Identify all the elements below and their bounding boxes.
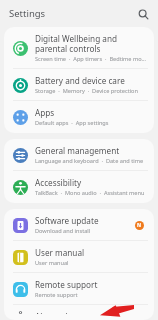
staticText: Download and install [35,227,91,235]
button[interactable]: User manual [4,241,154,273]
staticText: Accessibility [35,177,82,188]
staticText: Language and keyboard · Date and time [35,157,144,165]
staticText: Battery and device care [35,75,125,86]
button[interactable]: Remote support [4,273,154,305]
button[interactable]: Software update [4,209,154,241]
staticText: Default apps · App settings [35,119,109,127]
staticText: N [137,222,142,229]
staticText: Apps [35,107,55,118]
button[interactable]: Apps [4,101,154,133]
staticText: About phone [35,311,86,314]
staticText: User manual [35,247,85,258]
staticText: Remote support [35,279,98,290]
staticText: User manual [35,259,69,267]
staticText: Storage · Memory · Device protection [35,87,138,95]
staticText: Software update [35,215,99,226]
button[interactable]: Battery and device care [4,69,154,101]
button[interactable]: About phone [4,305,154,320]
button[interactable]: General management [4,139,154,171]
staticText: Remote support [35,291,78,299]
button[interactable]: Search [133,4,153,24]
staticText: Screen time · App timers · Bedtime mode [35,55,148,63]
button[interactable]: Digital Wellbeing and parental controls [4,27,154,69]
button[interactable]: Accessibility [4,171,154,203]
staticText: Settings [9,7,46,20]
staticText: General management [35,145,120,156]
staticText: Digital Wellbeing and parental controls [35,33,148,54]
staticText: TalkBack · Mono audio · Assistant menu [35,189,145,197]
